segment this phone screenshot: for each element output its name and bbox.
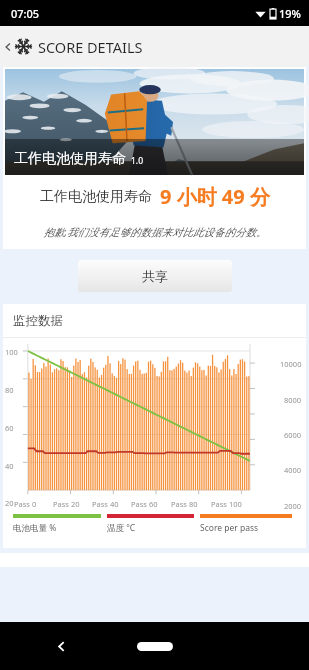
staticText: 抱歉,我们没有足够的数据来对比此设备的分数。 bbox=[43, 225, 267, 239]
staticText: 60 bbox=[5, 423, 14, 433]
staticText: 4000 bbox=[284, 465, 302, 475]
button[interactable]: Back bbox=[48, 633, 74, 659]
staticText: 07:05 bbox=[11, 6, 40, 21]
button[interactable]: Home bbox=[137, 642, 173, 651]
button[interactable]: Back bbox=[0, 26, 15, 67]
staticText: 8000 bbox=[284, 395, 302, 405]
button[interactable]: 工作电池使用寿命 bbox=[5, 69, 304, 175]
staticText: 监控数据 bbox=[13, 313, 63, 329]
staticText: 10000 bbox=[280, 359, 302, 369]
staticText: 9 小时 49 分 bbox=[160, 183, 270, 210]
button[interactable]: 工作电池使用寿命 bbox=[3, 177, 306, 215]
staticText: Pass 20 bbox=[53, 499, 80, 509]
staticText: 工作电池使用寿命 bbox=[40, 188, 152, 206]
staticText: Pass 60 bbox=[131, 499, 158, 509]
staticText: 温度 °C bbox=[107, 522, 136, 534]
staticText: 电池电量 % bbox=[13, 522, 57, 534]
staticText: 1.0 bbox=[131, 155, 144, 167]
button[interactable]: 共享 bbox=[78, 260, 232, 292]
staticText: SCORE DETAILS bbox=[38, 37, 143, 57]
staticText: 100 bbox=[5, 347, 18, 357]
staticText: Pass 100 bbox=[211, 499, 242, 509]
staticText: Pass 80 bbox=[171, 499, 198, 509]
staticText: 工作电池使用寿命 bbox=[14, 150, 126, 168]
staticText: 2000 bbox=[284, 501, 302, 511]
staticText: Pass 0 bbox=[14, 499, 37, 509]
staticText: 20 bbox=[5, 498, 14, 508]
staticText: 80 bbox=[5, 385, 14, 395]
staticText: Pass 40 bbox=[92, 499, 119, 509]
staticText: 19% bbox=[279, 6, 301, 21]
staticText: 共享 bbox=[142, 268, 168, 284]
staticText: 40 bbox=[5, 461, 14, 471]
staticText: Score per pass bbox=[200, 522, 259, 534]
staticText: 6000 bbox=[284, 430, 302, 440]
